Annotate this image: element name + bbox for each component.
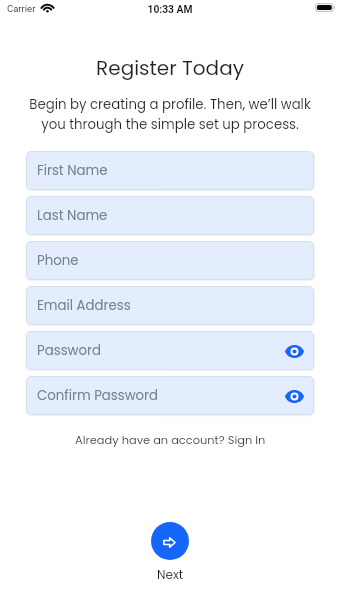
button[interactable]: Next [151, 522, 189, 560]
button[interactable]: Password [26, 331, 314, 370]
button[interactable]: Email Address [26, 286, 314, 325]
button[interactable]: Phone [26, 241, 314, 280]
button[interactable]: Last Name [26, 196, 314, 235]
staticText: Phone [37, 251, 79, 270]
staticText: Register Today [0, 54, 340, 82]
staticText: Confirm Password [37, 386, 159, 405]
staticText: Begin by creating a profile. Then, we’ll… [0, 95, 340, 133]
staticText: Last Name [37, 206, 108, 225]
button[interactable]: First Name [26, 151, 314, 190]
button[interactable]: Confirm Password [26, 376, 314, 415]
button[interactable]: Show password [281, 338, 307, 364]
staticText: Email Address [37, 296, 131, 315]
staticText: Carrier [7, 3, 36, 14]
staticText: 10:33 AM [0, 3, 340, 15]
button[interactable]: Next [157, 566, 184, 583]
button[interactable]: Already have an account? Sign In [67, 428, 274, 452]
staticText: First Name [37, 161, 108, 180]
staticText: Password [37, 341, 101, 360]
button[interactable]: Show password [281, 383, 307, 409]
